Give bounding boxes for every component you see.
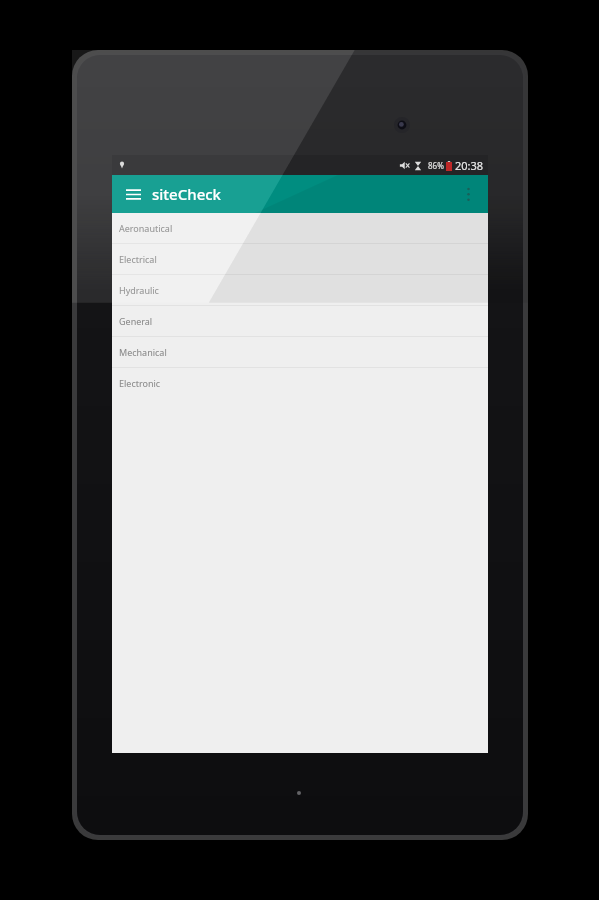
staticText: siteCheck xyxy=(152,184,221,204)
button[interactable]: General xyxy=(112,306,488,337)
button[interactable]: Open navigation drawer xyxy=(118,179,148,209)
button[interactable]: More options xyxy=(452,178,484,210)
staticText: Electrical xyxy=(119,253,157,265)
staticText: 86% xyxy=(428,160,444,171)
button[interactable]: Electrical xyxy=(112,244,488,275)
button[interactable]: Electronic xyxy=(112,368,488,398)
staticText: Hydraulic xyxy=(119,284,159,296)
staticText: Electronic xyxy=(119,377,161,389)
staticText: 20:38 xyxy=(455,158,484,173)
staticText: General xyxy=(119,315,153,327)
button[interactable]: Hydraulic xyxy=(112,275,488,306)
staticText: Mechanical xyxy=(119,346,167,358)
button[interactable]: Aeronautical xyxy=(112,213,488,244)
staticText: Aeronautical xyxy=(119,222,173,234)
button[interactable]: Mechanical xyxy=(112,337,488,368)
